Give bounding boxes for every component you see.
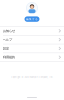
button[interactable]: 利用規約 bbox=[0, 53, 64, 61]
button[interactable]: お知らせ bbox=[0, 27, 64, 35]
staticText: 利用規約 bbox=[3, 55, 15, 59]
staticText: お知らせ bbox=[3, 29, 15, 33]
button[interactable]: 設定 bbox=[0, 44, 64, 53]
button[interactable]: 編集する bbox=[24, 16, 39, 22]
staticText: ヘルプ bbox=[3, 38, 12, 42]
button[interactable]: ヘルプ bbox=[0, 35, 64, 44]
staticText: 設定 bbox=[3, 46, 9, 50]
staticText: Copyright © 2024 Example Company, Inc. bbox=[10, 76, 53, 78]
staticText: 編集する bbox=[26, 17, 38, 21]
